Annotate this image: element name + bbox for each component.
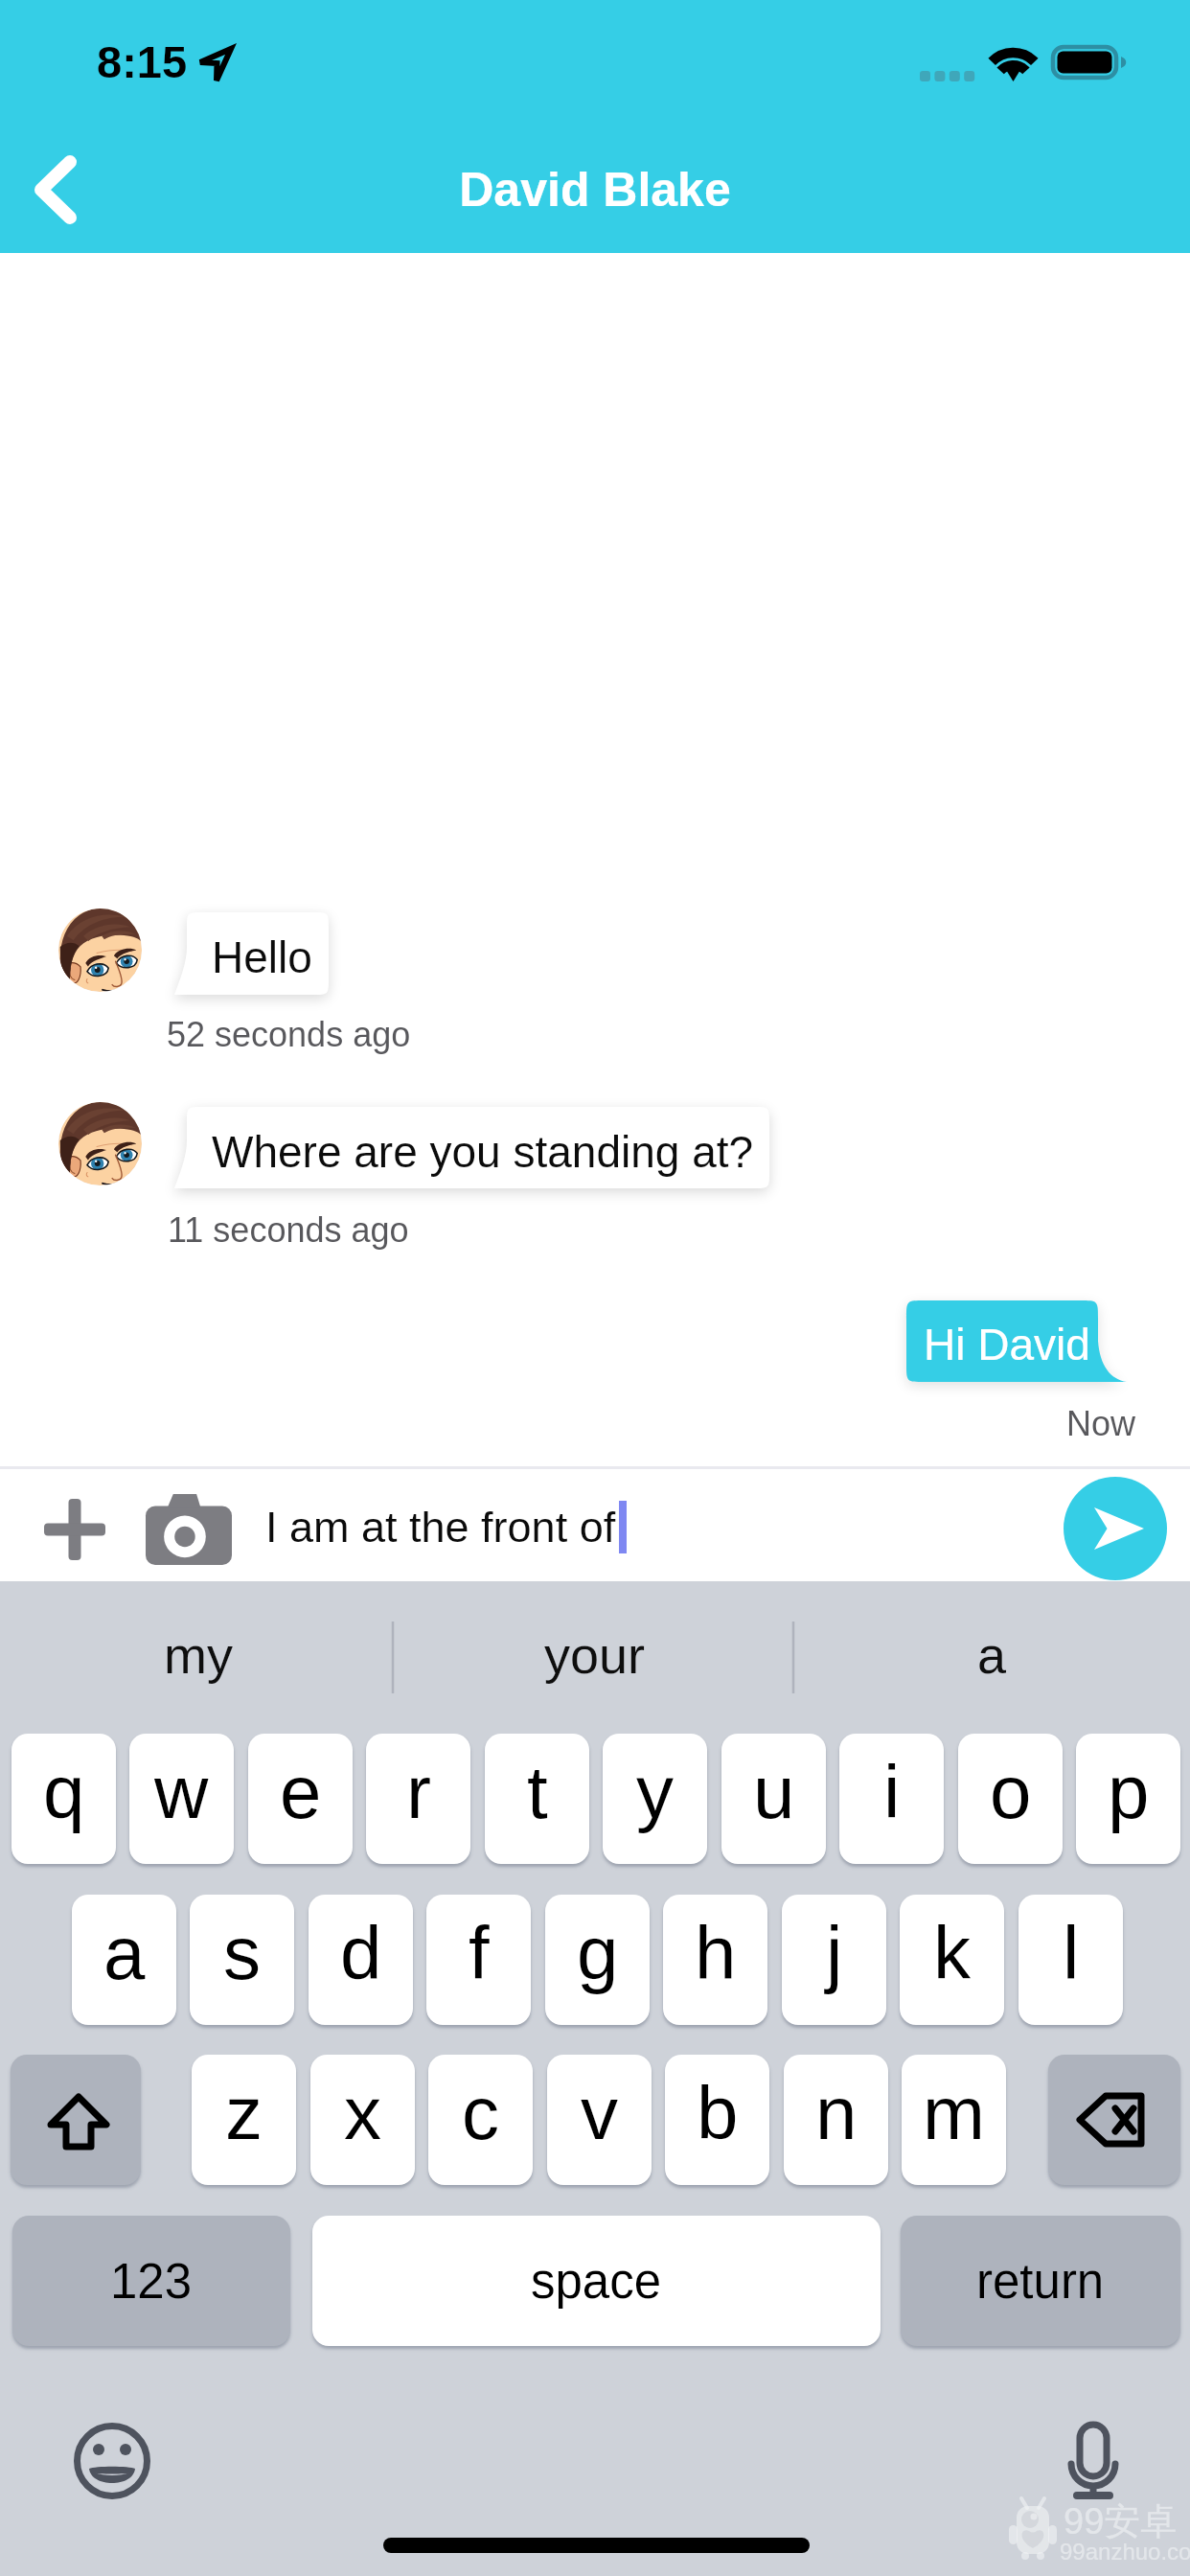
- button[interactable]: c: [428, 2055, 533, 2185]
- button[interactable]: a: [72, 1895, 176, 2025]
- staticText: k: [933, 1911, 971, 1994]
- button[interactable]: z: [192, 2055, 296, 2185]
- button[interactable]: Shift: [11, 2055, 141, 2185]
- staticText: return: [976, 2254, 1105, 2309]
- button[interactable]: x: [310, 2055, 415, 2185]
- staticText: Where are you standing at?: [212, 1127, 754, 1176]
- button[interactable]: u: [721, 1734, 826, 1864]
- staticText: d: [340, 1911, 382, 1994]
- button[interactable]: 123: [12, 2216, 290, 2346]
- staticText: David Blake: [0, 163, 1190, 217]
- staticText: f: [469, 1911, 490, 1994]
- button[interactable]: n: [784, 2055, 888, 2185]
- staticText: 99安卓: [1064, 2498, 1178, 2544]
- staticText: Hi David: [924, 1320, 1090, 1368]
- staticText: 52 seconds ago: [167, 1015, 411, 1053]
- staticText: y: [636, 1750, 674, 1833]
- staticText: z: [225, 2071, 263, 2154]
- button[interactable]: o: [958, 1734, 1063, 1864]
- button[interactable]: i: [839, 1734, 944, 1864]
- staticText: l: [1063, 1911, 1080, 1994]
- button[interactable]: Hello: [173, 912, 329, 1008]
- button[interactable]: e: [248, 1734, 353, 1864]
- button[interactable]: k: [900, 1895, 1004, 2025]
- button[interactable]: b: [665, 2055, 769, 2185]
- staticText: my: [164, 1626, 233, 1684]
- staticText: 123: [110, 2254, 193, 2309]
- button[interactable]: v: [547, 2055, 652, 2185]
- staticText: 99anzhuo.com: [1060, 2539, 1190, 2564]
- button[interactable]: space: [312, 2216, 881, 2346]
- staticText: r: [406, 1750, 431, 1833]
- staticText: n: [815, 2071, 858, 2154]
- button[interactable]: g: [545, 1895, 650, 2025]
- button[interactable]: t: [485, 1734, 589, 1864]
- staticText: s: [223, 1911, 261, 1994]
- staticText: 8:15: [97, 36, 188, 87]
- button[interactable]: Where are you standing at?: [173, 1107, 769, 1202]
- staticText: m: [923, 2071, 985, 2154]
- button[interactable]: my: [0, 1581, 397, 1704]
- staticText: a: [977, 1626, 1007, 1684]
- staticText: t: [527, 1750, 548, 1833]
- button[interactable]: Backspace: [1048, 2055, 1180, 2185]
- button[interactable]: q: [11, 1734, 116, 1864]
- staticText: j: [826, 1911, 843, 1994]
- staticText: space: [531, 2254, 662, 2309]
- button[interactable]: a: [793, 1581, 1190, 1704]
- staticText: b: [697, 2071, 739, 2154]
- button[interactable]: Dictation microphone: [1039, 2406, 1148, 2516]
- button[interactable]: f: [426, 1895, 531, 2025]
- button[interactable]: Add attachment: [25, 1480, 125, 1579]
- staticText: v: [581, 2071, 618, 2154]
- button[interactable]: w: [129, 1734, 234, 1864]
- staticText: o: [990, 1750, 1032, 1833]
- button[interactable]: d: [309, 1895, 413, 2025]
- button[interactable]: r: [366, 1734, 470, 1864]
- button[interactable]: Send: [1064, 1477, 1167, 1580]
- staticText: i: [883, 1750, 901, 1833]
- staticText: c: [462, 2071, 499, 2154]
- staticText: I am at the front of: [265, 1503, 616, 1551]
- staticText: q: [43, 1750, 85, 1833]
- staticText: u: [753, 1750, 795, 1833]
- button[interactable]: s: [190, 1895, 294, 2025]
- staticText: x: [344, 2071, 381, 2154]
- staticText: Now: [1066, 1404, 1136, 1442]
- button[interactable]: p: [1076, 1734, 1180, 1864]
- button[interactable]: return: [901, 2216, 1180, 2346]
- staticText: p: [1108, 1750, 1150, 1833]
- button[interactable]: m: [902, 2055, 1006, 2185]
- staticText: Hello: [212, 932, 312, 981]
- staticText: g: [577, 1911, 619, 1994]
- staticText: h: [695, 1911, 737, 1994]
- staticText: w: [154, 1750, 209, 1833]
- button[interactable]: j: [782, 1895, 886, 2025]
- button[interactable]: Hi David: [906, 1300, 1127, 1395]
- button[interactable]: y: [603, 1734, 707, 1864]
- staticText: e: [280, 1750, 322, 1833]
- staticText: 11 seconds ago: [168, 1210, 409, 1249]
- staticText: your: [544, 1626, 646, 1684]
- button[interactable]: h: [663, 1895, 767, 2025]
- button[interactable]: l: [1018, 1895, 1123, 2025]
- button[interactable]: Emoji keyboard: [57, 2406, 167, 2516]
- button[interactable]: your: [397, 1581, 793, 1704]
- staticText: a: [103, 1911, 146, 1994]
- button[interactable]: Back: [0, 130, 109, 249]
- button[interactable]: Camera: [142, 1480, 236, 1579]
